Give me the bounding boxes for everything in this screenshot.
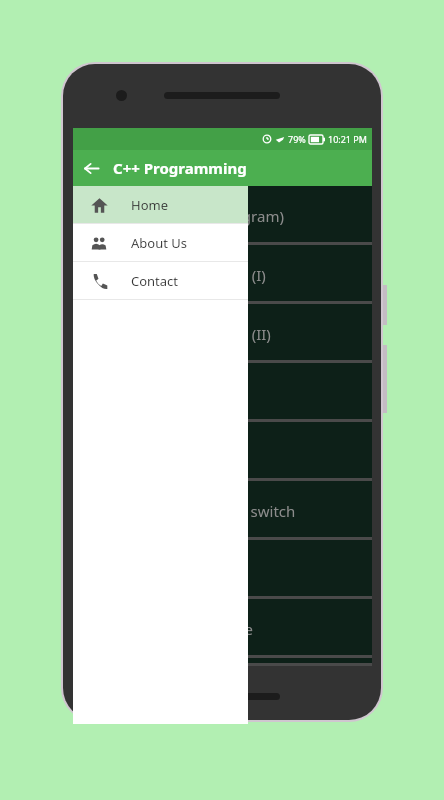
button[interactable]: Introduction (First Program) xyxy=(73,186,372,245)
button[interactable]: Contact xyxy=(73,262,248,299)
staticText: About Us xyxy=(131,234,188,252)
button[interactable]: Home xyxy=(73,186,248,223)
staticText: Contact xyxy=(131,272,179,290)
staticText: Loops - while / do-while xyxy=(87,619,254,639)
staticText: 10:21 PM xyxy=(328,133,367,145)
staticText: Introduction (First Program) xyxy=(87,206,284,226)
button[interactable]: Operators in C++ xyxy=(73,363,372,422)
staticText: Variables & Data Types (I) xyxy=(87,265,266,285)
button[interactable]: Variables & Data Types (II) xyxy=(73,304,372,363)
button[interactable]: Functions in C++ xyxy=(73,658,372,666)
staticText: Home xyxy=(131,196,168,214)
staticText: Variables & Data Types (II) xyxy=(87,324,271,344)
button[interactable]: Variables & Data Types (I) xyxy=(73,245,372,304)
button[interactable]: About Us xyxy=(73,224,248,261)
button[interactable]: Loops - for xyxy=(73,540,372,599)
button[interactable]: Switch Case Selection - switch xyxy=(73,481,372,540)
button[interactable]: Back xyxy=(73,150,109,186)
staticText: 79% xyxy=(288,133,306,145)
button[interactable]: Loops - while / do-while xyxy=(73,599,372,658)
staticText: Switch Case Selection - switch xyxy=(87,501,296,521)
staticText: C++ Programming xyxy=(113,158,247,178)
button[interactable]: Decision Making - if xyxy=(73,422,372,481)
